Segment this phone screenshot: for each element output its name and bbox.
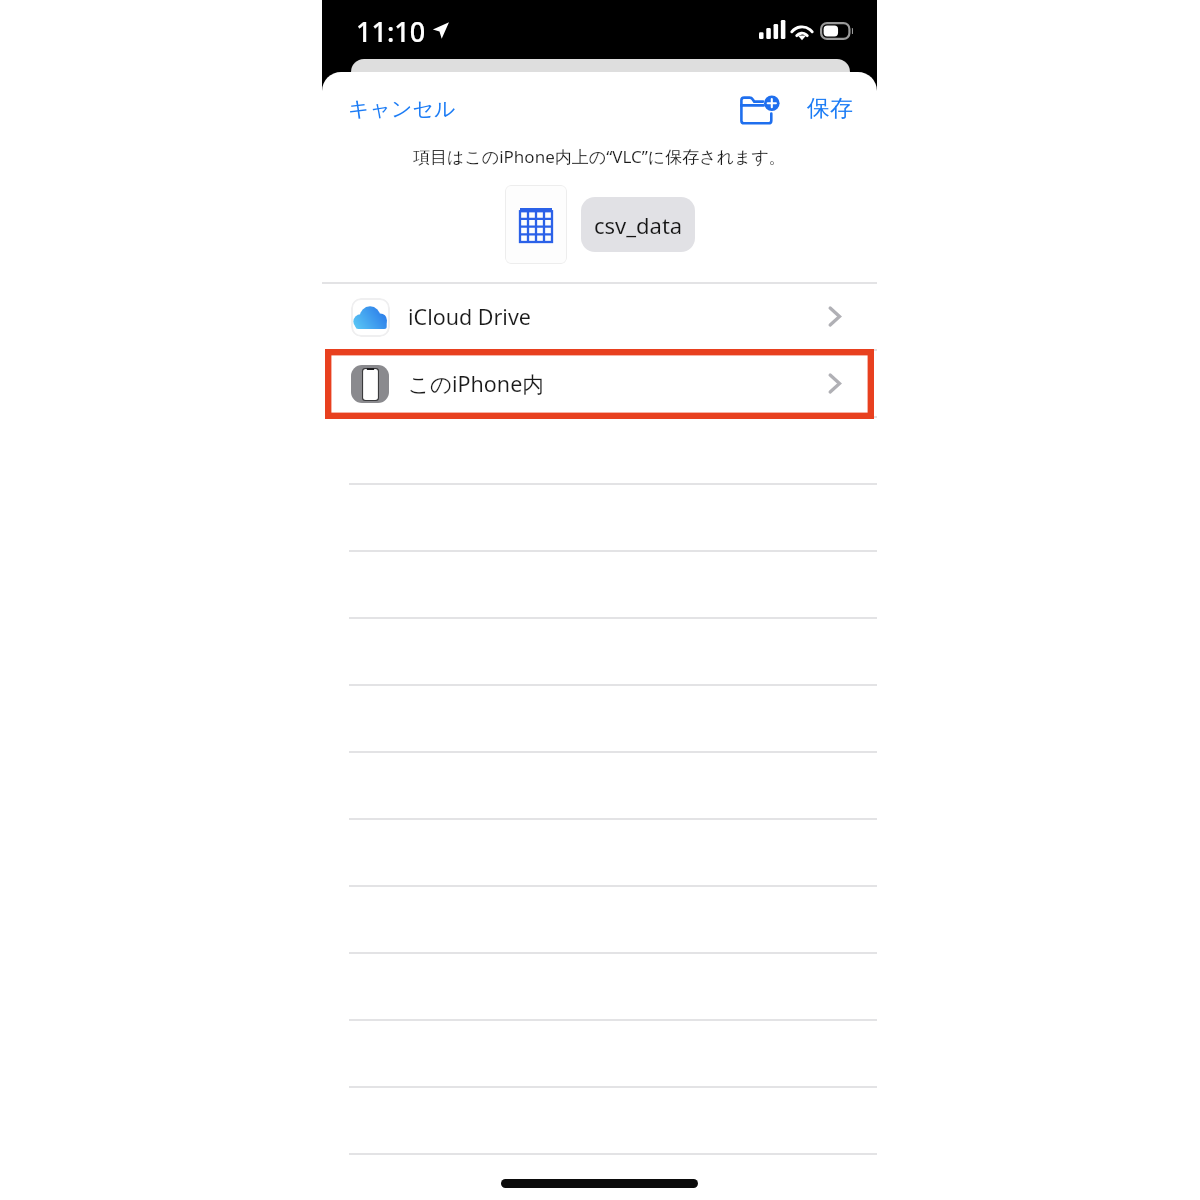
staticText: csv_data xyxy=(594,210,683,240)
staticText: 11:10 xyxy=(356,13,426,50)
button[interactable]: キャンセル xyxy=(334,88,470,130)
button[interactable]: このiPhone内 xyxy=(322,351,877,416)
staticText: キャンセル xyxy=(348,96,456,122)
staticText: iCloud Drive xyxy=(408,302,531,331)
button[interactable]: csv_data xyxy=(581,197,695,252)
button[interactable]: New Folder xyxy=(732,88,784,133)
button[interactable]: iCloud Drive xyxy=(322,284,877,349)
staticText: このiPhone内 xyxy=(408,369,544,398)
button[interactable]: 保存 xyxy=(799,86,861,131)
staticText: 保存 xyxy=(807,94,853,123)
staticText: 項目はこのiPhone内上の“VLC”に保存されます。 xyxy=(413,145,786,168)
